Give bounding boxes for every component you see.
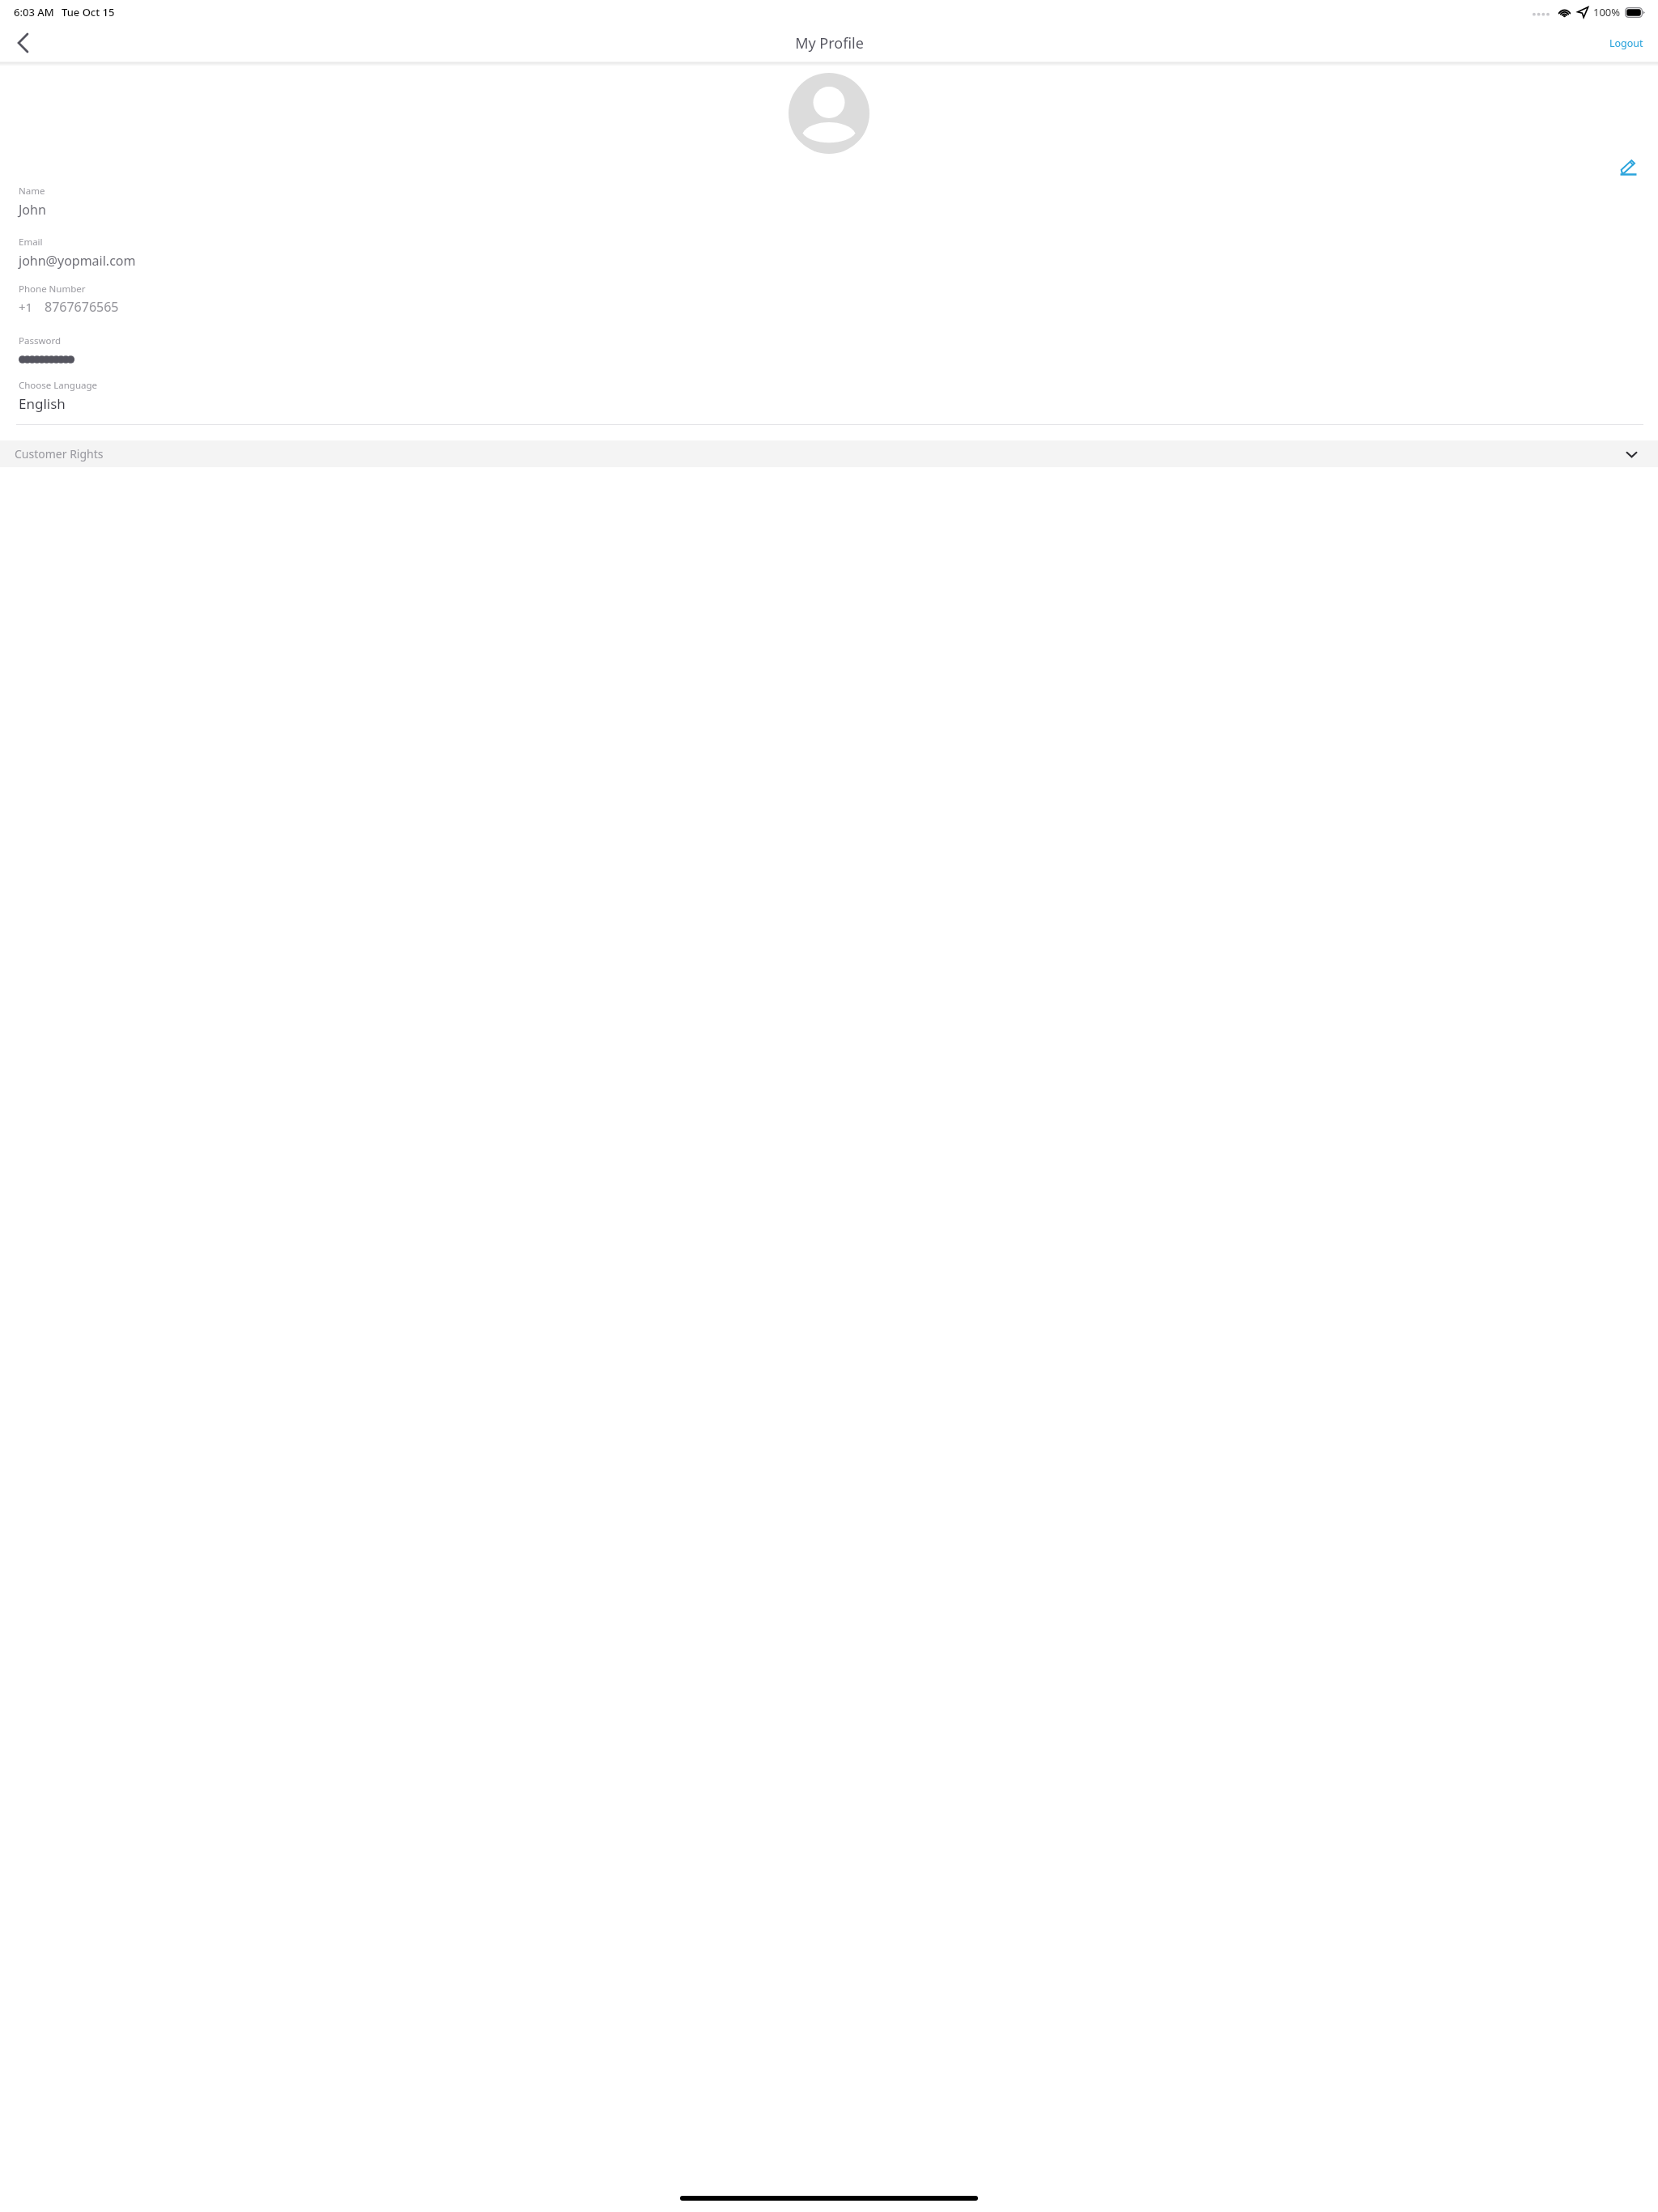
button[interactable]: Name [19,185,45,198]
staticText: Customer Rights [15,446,104,462]
staticText: Choose Language [19,379,98,392]
button[interactable]: Back [5,25,40,61]
button[interactable]: Logout [1603,30,1650,57]
button[interactable]: Customer Rights [0,440,1658,467]
button[interactable]: Email [19,236,43,249]
staticText: +1 [19,299,33,315]
staticText: 100% [1593,5,1621,19]
staticText: My Profile [795,33,864,53]
staticText: 6:03 AM [14,5,54,19]
button[interactable]: Choose Language [19,379,98,392]
button[interactable]: Phone Number [19,283,86,296]
button[interactable]: Profile photo [789,73,869,154]
staticText: English [19,394,66,413]
staticText: Email [19,236,43,249]
staticText: Password [19,334,62,347]
staticText: john@yopmail.com [19,252,136,270]
button[interactable]: Edit profile [1616,155,1640,180]
staticText: 8767676565 [45,298,119,316]
staticText: Name [19,185,45,198]
button[interactable]: John [19,201,46,219]
button[interactable]: john@yopmail.com [19,252,136,270]
button[interactable] [19,355,119,364]
button[interactable]: English [19,394,66,413]
staticText: Tue Oct 15 [62,5,115,19]
staticText: Logout [1609,36,1643,50]
staticText: Phone Number [19,283,86,296]
button[interactable]: Password [19,334,62,347]
staticText: John [19,201,46,219]
